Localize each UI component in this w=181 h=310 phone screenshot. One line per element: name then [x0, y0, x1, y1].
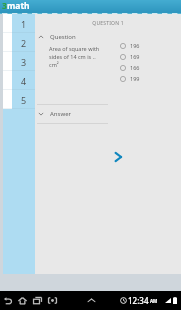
staticText: 1 — [21, 18, 27, 30]
button[interactable]: Show notifications — [84, 291, 98, 310]
staticText: 169 — [130, 53, 140, 60]
staticText: Answer — [50, 110, 71, 118]
button[interactable]: 166 — [119, 62, 159, 73]
staticText: math — [7, 0, 30, 11]
staticText: 3 — [2, 0, 7, 11]
button[interactable]: Recent apps — [30, 291, 44, 310]
button[interactable]: 1 — [0, 14, 35, 33]
button[interactable]: 196 — [119, 40, 159, 51]
staticText: 3 — [21, 56, 27, 68]
button[interactable]: 169 — [119, 51, 159, 62]
button[interactable]: Back — [0, 291, 14, 310]
staticText: 196 — [130, 42, 140, 49]
button[interactable]: Answer — [35, 109, 181, 119]
staticText: Question — [50, 33, 76, 41]
staticText: 12:34 — [128, 295, 149, 306]
staticText: QUESTION 1 — [35, 20, 181, 27]
staticText: 2 — [21, 37, 27, 49]
staticText: 199 — [130, 75, 140, 82]
button[interactable]: Next question — [108, 147, 128, 167]
button[interactable]: Question — [35, 32, 181, 42]
staticText: 5 — [21, 94, 27, 106]
button[interactable]: 3 — [0, 52, 35, 71]
button[interactable]: Screenshot — [45, 291, 59, 310]
button[interactable]: 4 — [0, 71, 35, 90]
staticText: 4 — [21, 75, 27, 87]
staticText: Area of square with sides of 14 cm is ..… — [49, 45, 101, 69]
staticText: AM — [150, 298, 158, 304]
button[interactable]: 199 — [119, 73, 159, 84]
button[interactable]: Home — [15, 291, 29, 310]
button[interactable]: 2 — [0, 33, 35, 52]
button[interactable]: 5 — [0, 90, 35, 109]
staticText: 166 — [130, 64, 140, 71]
